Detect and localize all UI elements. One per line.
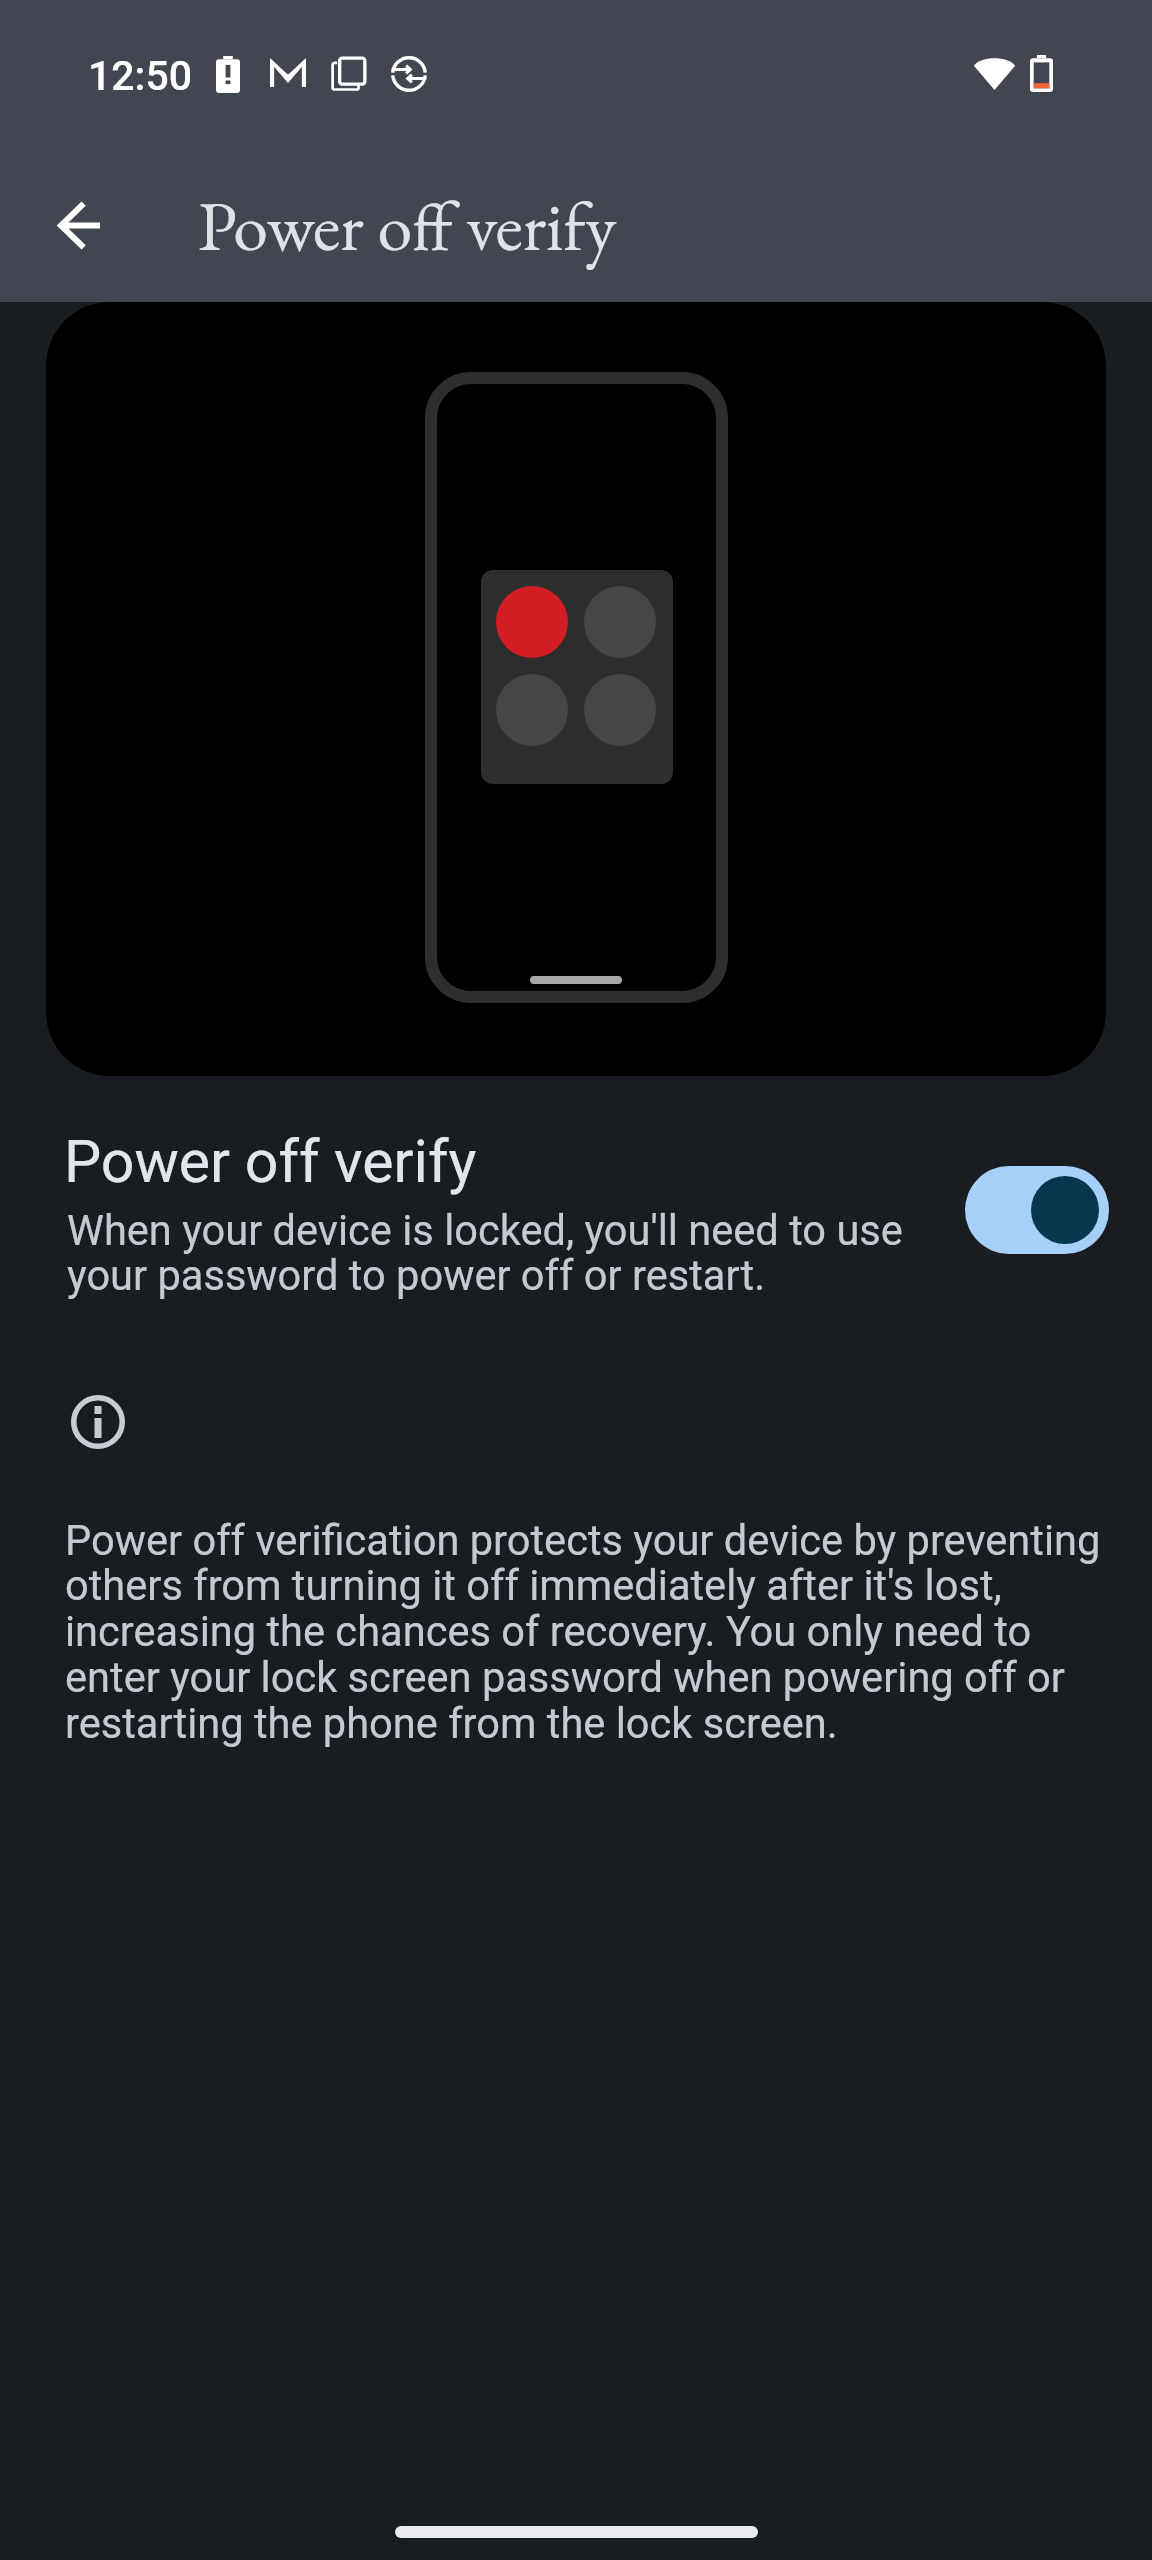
staticText: Power off verify bbox=[64, 1127, 477, 1196]
staticText: Power off verification protects your dev… bbox=[65, 1516, 1110, 1749]
staticText: When your device is locked, you'll need … bbox=[67, 1206, 947, 1301]
staticText: Power off verify bbox=[198, 180, 617, 271]
staticText: 12:50 bbox=[88, 52, 193, 100]
button[interactable]: Power off verify bbox=[0, 1096, 1152, 1320]
button[interactable]: Power off verify toggle, on bbox=[965, 1166, 1109, 1254]
button[interactable]: Navigate up bbox=[25, 170, 135, 280]
